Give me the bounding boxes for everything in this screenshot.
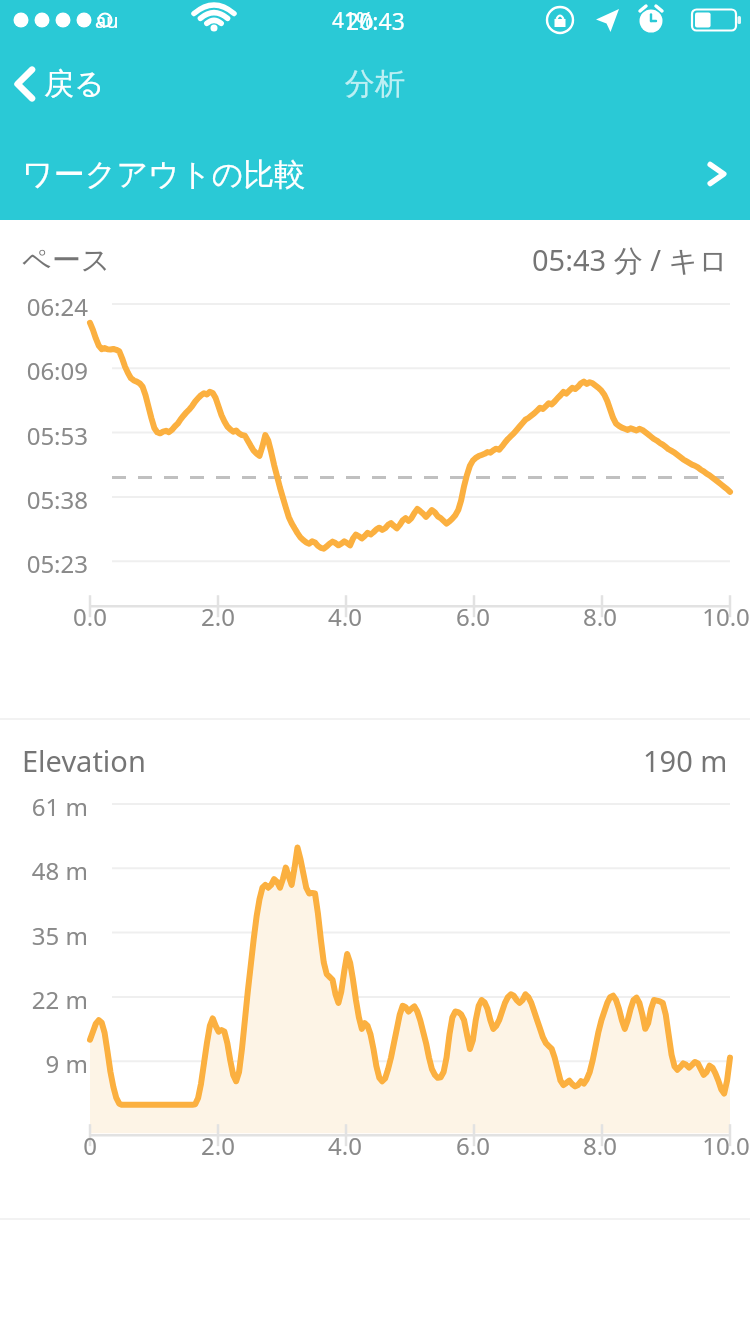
staticText: 6.0 bbox=[447, 1129, 499, 1162]
staticText: 2.0 bbox=[192, 600, 244, 633]
staticText: 2.0 bbox=[192, 1129, 244, 1162]
staticText: 190 m bbox=[643, 741, 728, 780]
staticText: 35 m bbox=[22, 919, 88, 952]
staticText: 4.0 bbox=[319, 1129, 371, 1162]
staticText: ワークアウトの比較 bbox=[22, 155, 306, 194]
staticText: 8.0 bbox=[574, 600, 626, 633]
staticText: 10.0 bbox=[702, 600, 750, 633]
staticText: 0 bbox=[64, 1129, 116, 1162]
staticText: 0.0 bbox=[64, 600, 116, 633]
staticText: 05:43 分 / キロ bbox=[532, 240, 728, 280]
staticText: 6.0 bbox=[447, 600, 499, 633]
staticText: Elevation bbox=[22, 741, 146, 780]
staticText: 22 m bbox=[22, 983, 88, 1016]
other: Open comparison bbox=[700, 157, 734, 191]
staticText: 61 m bbox=[22, 790, 88, 823]
staticText: 分析 bbox=[345, 65, 405, 103]
staticText: ペース bbox=[22, 242, 111, 279]
staticText: 戻る bbox=[44, 65, 105, 103]
staticText: 9 m bbox=[22, 1047, 88, 1080]
staticText: 48 m bbox=[22, 854, 88, 887]
button[interactable]: 戻る bbox=[0, 57, 123, 111]
button[interactable]: ワークアウトの比較 bbox=[0, 128, 750, 220]
staticText: 05:38 bbox=[22, 483, 88, 516]
staticText: 10.0 bbox=[702, 1129, 750, 1162]
staticText: 4.0 bbox=[319, 600, 371, 633]
staticText: 20:43 bbox=[346, 5, 405, 36]
staticText: 8.0 bbox=[574, 1129, 626, 1162]
staticText: 41% bbox=[332, 6, 374, 35]
staticText: 05:23 bbox=[22, 547, 88, 580]
staticText: 06:09 bbox=[22, 354, 88, 387]
staticText: au bbox=[95, 7, 119, 34]
staticText: 06:24 bbox=[22, 290, 88, 323]
staticText: 05:53 bbox=[22, 419, 88, 452]
